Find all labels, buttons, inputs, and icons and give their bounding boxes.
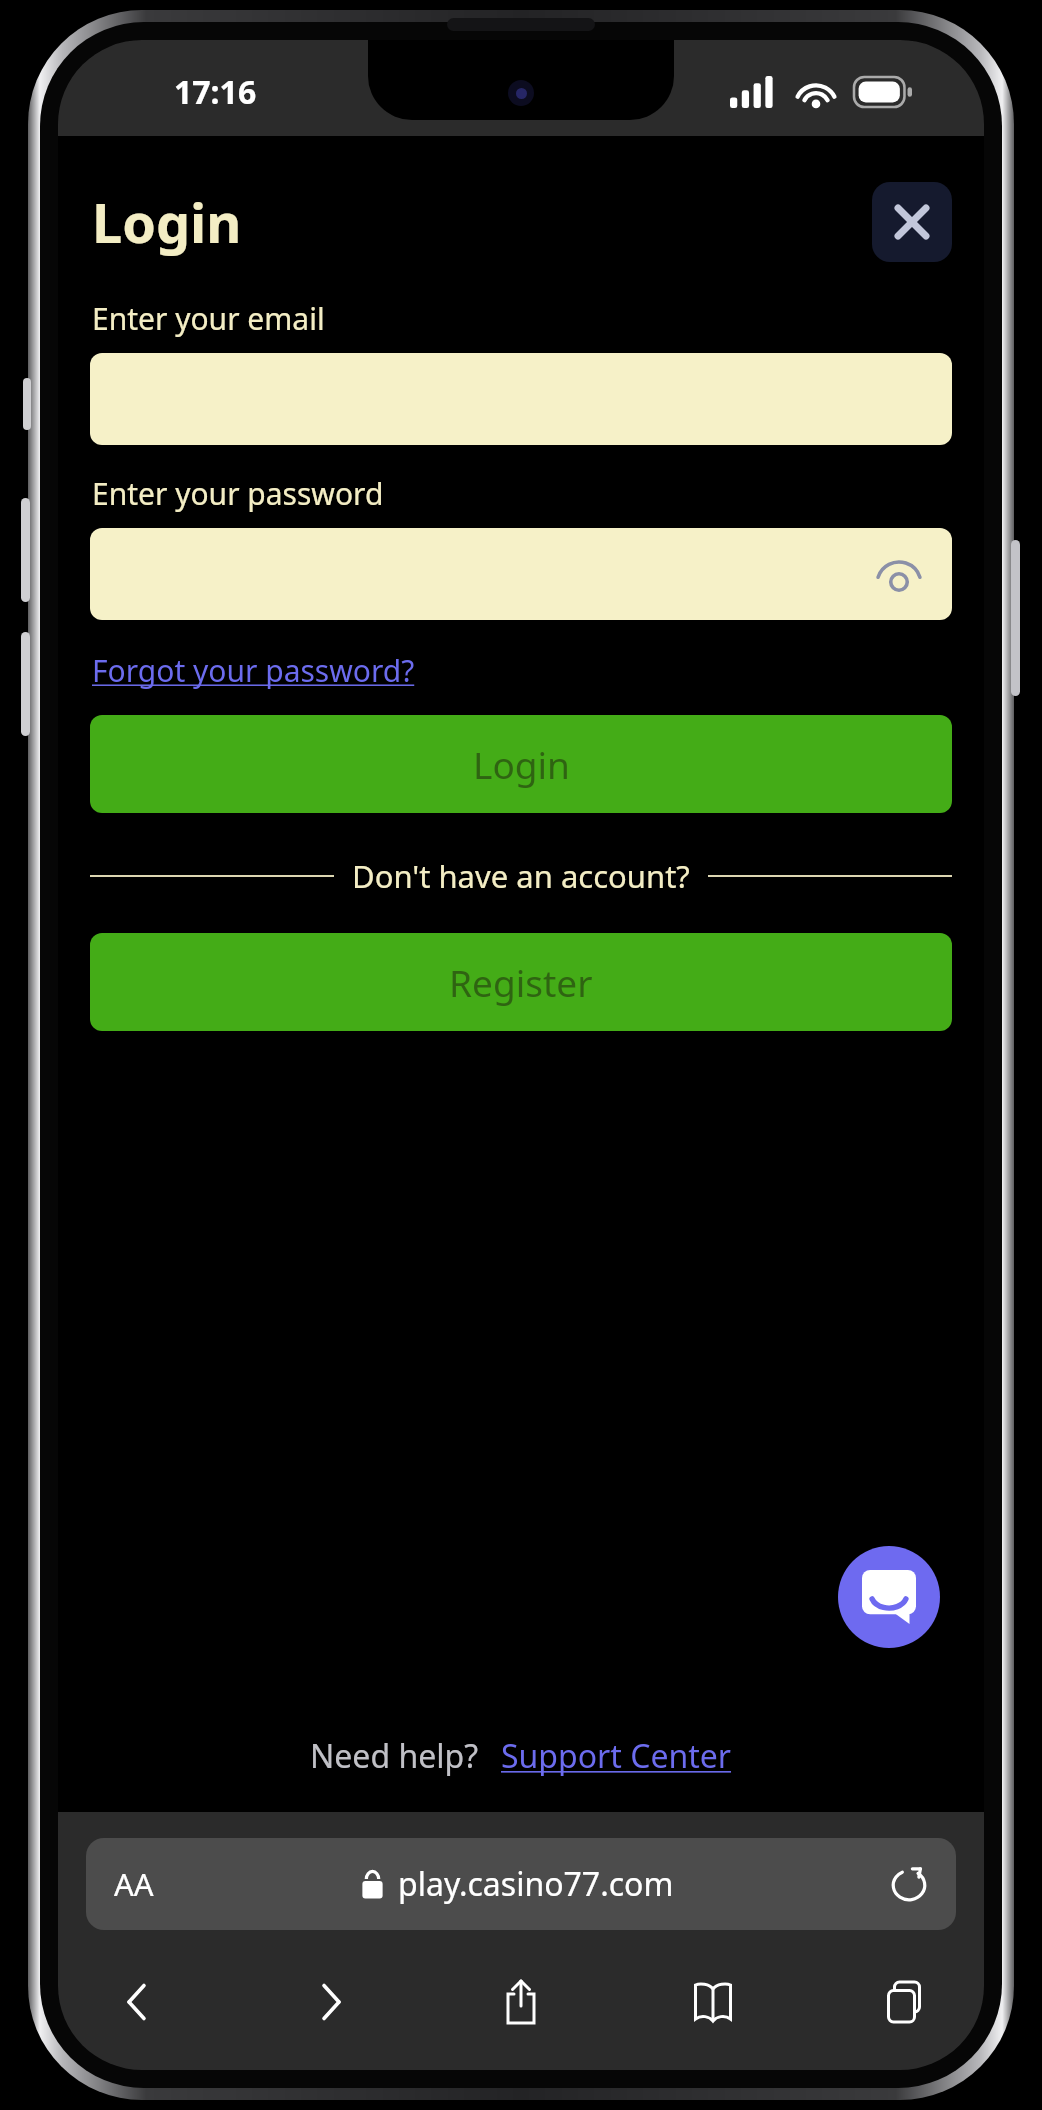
- button[interactable]: [90, 353, 952, 445]
- button[interactable]: Tabs: [860, 1958, 948, 2046]
- button[interactable]: Show password: [90, 528, 952, 620]
- staticText: Login: [92, 185, 242, 259]
- button[interactable]: Close: [872, 182, 952, 262]
- staticText: Need help?: [310, 1734, 479, 1778]
- staticText: Don't have an account?: [352, 855, 690, 897]
- staticText: 17:16: [174, 70, 257, 114]
- button[interactable]: AA: [86, 1838, 956, 1930]
- staticText: Enter your email: [92, 298, 325, 339]
- button[interactable]: Support Center: [501, 1734, 732, 1778]
- button[interactable]: Open chat: [838, 1546, 940, 1648]
- button[interactable]: Bookmarks: [669, 1958, 757, 2046]
- staticText: play.casino77.com: [398, 1862, 674, 1906]
- button[interactable]: Forgot your password?: [92, 650, 415, 691]
- button[interactable]: Share: [477, 1958, 565, 2046]
- staticText: Forgot your password?: [92, 650, 415, 691]
- button[interactable]: Register: [90, 933, 952, 1031]
- button[interactable]: Back: [94, 1958, 182, 2046]
- staticText: AA: [114, 1863, 154, 1905]
- staticText: Support Center: [501, 1734, 732, 1778]
- staticText: Register: [449, 957, 593, 1007]
- staticText: Login: [473, 739, 570, 789]
- button[interactable]: Show password: [870, 545, 928, 603]
- button[interactable]: Reload: [882, 1857, 936, 1911]
- staticText: Enter your password: [92, 473, 384, 514]
- button[interactable]: Forward: [286, 1958, 374, 2046]
- button[interactable]: Login: [90, 715, 952, 813]
